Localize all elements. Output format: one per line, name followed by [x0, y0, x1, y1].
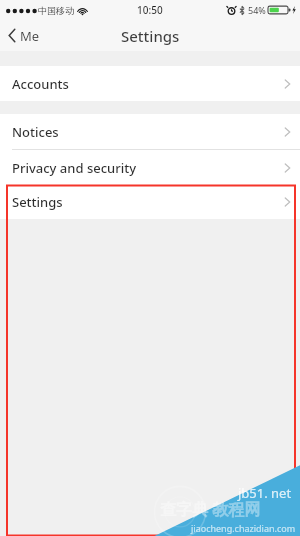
- staticText: 中国移动: [38, 5, 74, 16]
- button[interactable]: Settings: [0, 185, 300, 219]
- staticText: Settings: [12, 193, 63, 211]
- staticText: Accounts: [12, 75, 69, 93]
- staticText: 54%: [248, 4, 266, 16]
- staticText: Notices: [12, 123, 59, 141]
- staticText: Settings: [121, 26, 180, 46]
- staticText: jiaocheng.chazidian.com: [191, 522, 296, 534]
- button[interactable]: Notices: [0, 114, 300, 150]
- staticText: 查字典 教程网: [160, 498, 261, 520]
- staticText: Me: [20, 27, 40, 45]
- button[interactable]: Accounts: [0, 66, 300, 101]
- button[interactable]: Privacy and security: [0, 150, 300, 185]
- staticText: jb51. net: [238, 484, 292, 502]
- button[interactable]: Me: [0, 20, 50, 51]
- staticText: 10:50: [137, 3, 163, 17]
- staticText: Privacy and security: [12, 159, 137, 177]
